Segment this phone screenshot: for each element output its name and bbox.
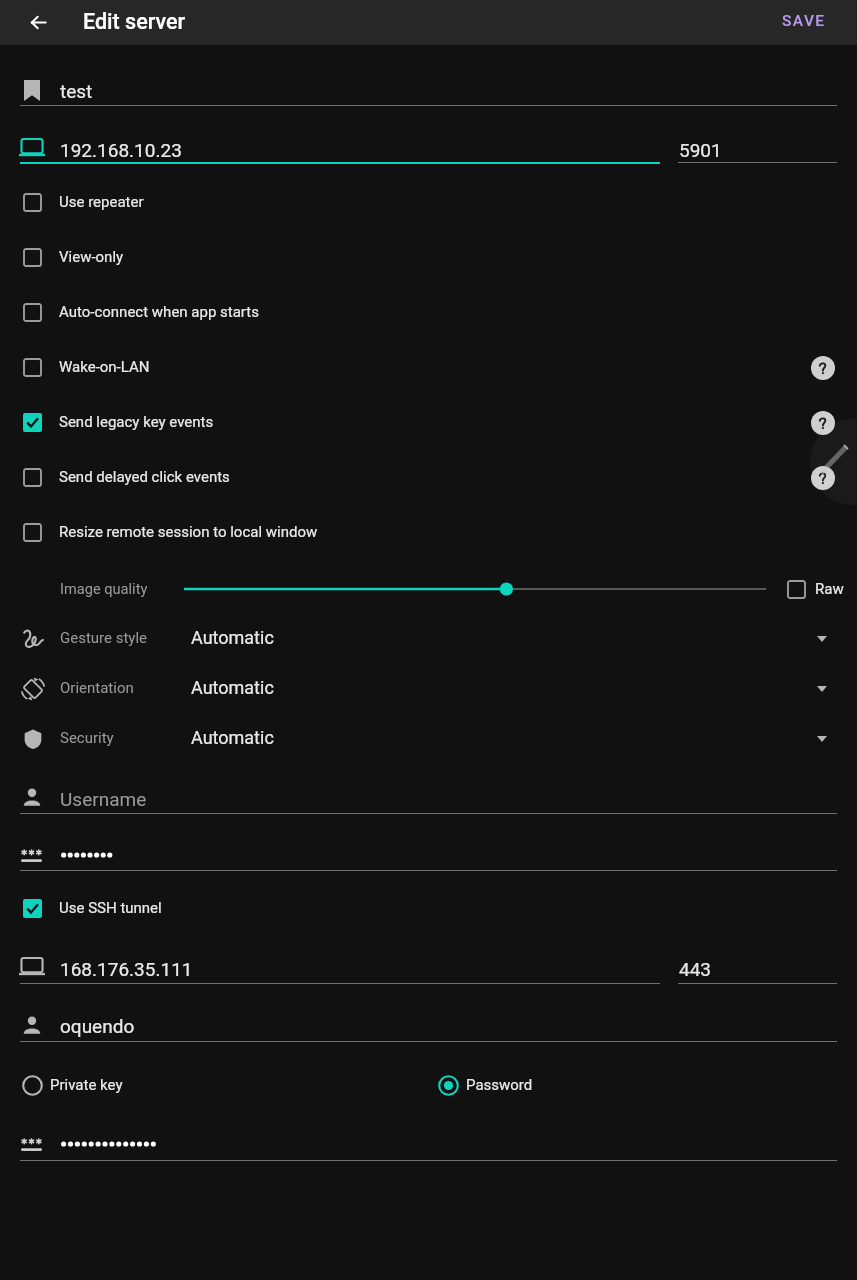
- button[interactable]: [0, 882, 857, 936]
- button[interactable]: SAVE: [767, 0, 841, 43]
- button[interactable]: [0, 176, 857, 230]
- button[interactable]: [0, 451, 857, 505]
- staticText: 5901: [679, 139, 722, 161]
- button[interactable]: [0, 714, 857, 764]
- staticText: SAVE: [782, 12, 826, 30]
- staticText: Automatic: [191, 677, 274, 698]
- staticText: Auto-connect when app starts: [59, 303, 259, 321]
- button[interactable]: [0, 614, 857, 664]
- staticText: Automatic: [191, 627, 274, 648]
- button[interactable]: Private key: [22, 1063, 123, 1107]
- button[interactable]: [0, 341, 857, 395]
- staticText: 443: [679, 958, 712, 980]
- staticText: Use SSH tunnel: [59, 899, 162, 917]
- staticText: Orientation: [60, 679, 134, 697]
- button[interactable]: Help: [807, 352, 839, 384]
- button[interactable]: [0, 231, 857, 285]
- button[interactable]: [0, 286, 857, 340]
- staticText: oquendo: [60, 1015, 135, 1037]
- staticText: Use repeater: [59, 193, 144, 211]
- staticText: Edit server: [83, 9, 186, 34]
- button[interactable]: [0, 664, 857, 714]
- button[interactable]: [0, 506, 857, 560]
- staticText: Send legacy key events: [59, 413, 214, 431]
- staticText: Private key: [50, 1076, 123, 1094]
- button[interactable]: Password: [438, 1063, 533, 1107]
- staticText: Raw: [815, 580, 844, 598]
- button[interactable]: Help: [807, 407, 839, 439]
- button[interactable]: Navigate up: [23, 7, 53, 37]
- staticText: Gesture style: [60, 629, 148, 647]
- staticText: Image quality: [60, 580, 148, 597]
- staticText: Password: [466, 1076, 533, 1094]
- staticText: Automatic: [191, 727, 274, 748]
- staticText: Security: [60, 729, 114, 747]
- staticText: 192.168.10.23: [60, 139, 182, 161]
- button[interactable]: [0, 396, 857, 450]
- staticText: Resize remote session to local window: [59, 523, 318, 541]
- staticText: test: [60, 80, 93, 102]
- staticText: 168.176.35.111: [60, 958, 193, 980]
- staticText: Wake-on-LAN: [59, 358, 150, 376]
- staticText: Send delayed click events: [59, 468, 230, 486]
- button[interactable]: Raw: [787, 569, 844, 609]
- staticText: View-only: [59, 248, 124, 266]
- staticText: Username: [60, 788, 147, 810]
- button[interactable]: Help: [807, 462, 839, 494]
